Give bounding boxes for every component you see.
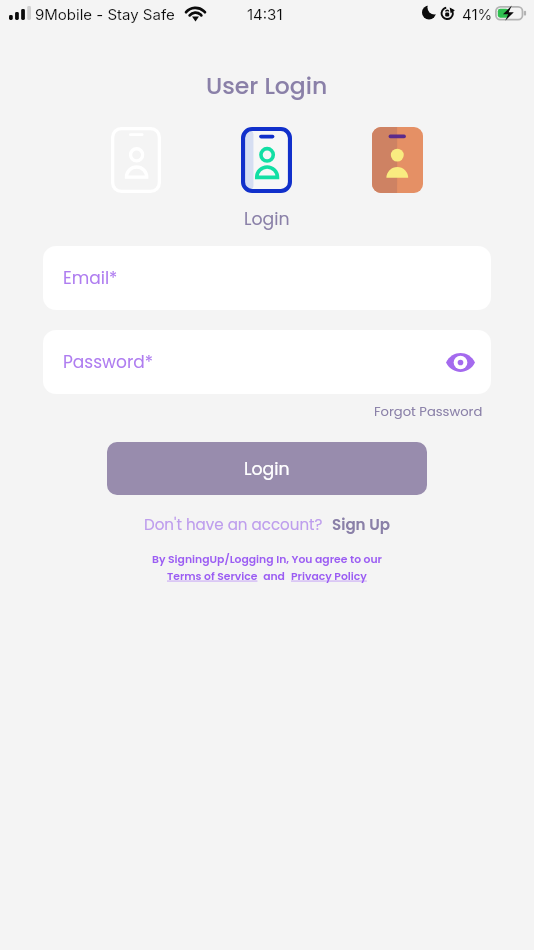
staticText: Login: [244, 207, 290, 231]
staticText: 41%: [462, 5, 493, 23]
button[interactable]: Show password: [444, 346, 476, 378]
staticText: Login: [244, 457, 290, 481]
staticText: Password*: [63, 350, 153, 374]
staticText: Email*: [63, 266, 118, 290]
staticText: Don't have an account?: [144, 514, 323, 535]
staticText: 14:31: [247, 5, 283, 23]
staticText: By SigningUp/Logging In, You agree to ou…: [152, 552, 382, 567]
button[interactable]: Email*: [43, 246, 491, 310]
button[interactable]: Password*: [43, 330, 491, 394]
button[interactable]: Forgot Password: [374, 402, 483, 420]
button[interactable]: Terms of Service: [167, 569, 258, 584]
staticText: User Login: [206, 69, 328, 102]
button[interactable]: Login: [107, 442, 427, 495]
button[interactable]: Sign Up: [332, 514, 390, 535]
staticText: and: [258, 569, 291, 584]
staticText: 9Mobile - Stay Safe: [35, 5, 175, 23]
button[interactable]: Privacy Policy: [291, 569, 367, 584]
